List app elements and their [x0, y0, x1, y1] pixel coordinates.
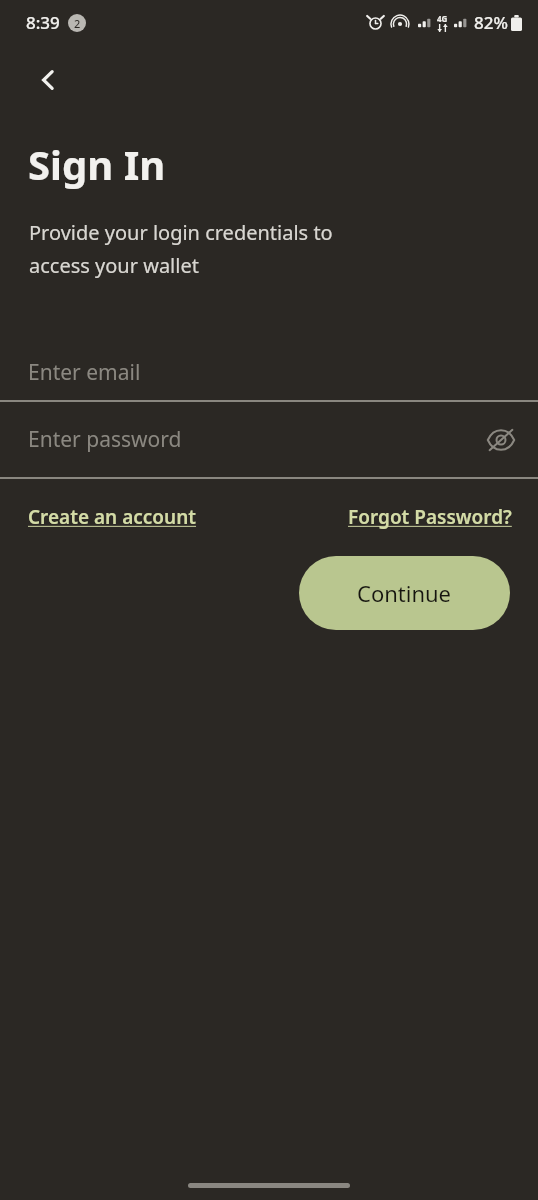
button[interactable]: Back	[20, 52, 76, 108]
staticText: Enter password	[28, 425, 182, 454]
button[interactable]: Forgot Password?	[348, 504, 512, 530]
staticText: 4G	[437, 13, 448, 24]
staticText: Enter email	[28, 358, 141, 387]
staticText: Continue	[357, 578, 452, 608]
button[interactable]: Enter password	[0, 402, 538, 477]
staticText: Create an account	[28, 504, 197, 530]
staticText: Provide your login credentials to access…	[29, 219, 333, 279]
staticText: 2	[74, 16, 81, 31]
button[interactable]: Show password	[478, 417, 524, 463]
button[interactable]: Enter email	[0, 345, 538, 400]
staticText: Sign In	[28, 137, 166, 191]
staticText: 8:39	[26, 11, 60, 34]
button[interactable]: Create an account	[28, 504, 197, 530]
staticText: 82%	[474, 11, 508, 34]
button[interactable]: Continue	[299, 556, 510, 630]
staticText: Forgot Password?	[348, 504, 512, 530]
